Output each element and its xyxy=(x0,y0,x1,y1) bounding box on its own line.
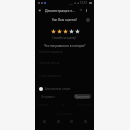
staticText: Анонимный отзыв xyxy=(45,87,71,91)
button[interactable]: Nav 2 xyxy=(54,117,62,125)
button[interactable]: Пропустить xyxy=(74,94,91,99)
staticText: Отправить xyxy=(41,95,55,99)
staticText: Чистота салона xyxy=(39,61,60,65)
button[interactable]: Nav 4 xyxy=(81,117,89,125)
staticText: Пропустить xyxy=(75,95,90,99)
button[interactable]: Rate 4 xyxy=(68,28,74,34)
button[interactable]: Nav 3 xyxy=(67,117,75,125)
button[interactable]: Back xyxy=(36,7,42,13)
button[interactable]: Отправить xyxy=(40,94,56,100)
button[interactable]: Rate 5 xyxy=(74,28,80,34)
staticText: Спасибо за оценку! xyxy=(52,36,77,40)
staticText: Что понравилось в поездке? xyxy=(44,44,86,48)
staticText: Стиль вождения xyxy=(39,74,61,78)
button[interactable]: Rate 1 xyxy=(50,28,56,34)
button[interactable]: Expand xyxy=(78,7,84,13)
staticText: LTE xyxy=(69,2,73,5)
staticText: Рейтинг водителя xyxy=(39,50,63,54)
button[interactable]: Rate 3 xyxy=(62,28,68,34)
button[interactable]: Nav 1 xyxy=(40,117,48,125)
button[interactable]: Help xyxy=(86,18,90,22)
button[interactable]: More options xyxy=(83,7,89,13)
button[interactable]: Rate 2 xyxy=(56,28,62,34)
button[interactable]: Анонимный отзыв xyxy=(35,86,94,92)
staticText: Как Вам оценка? xyxy=(52,18,77,22)
staticText: Демонстрация э… xyxy=(45,8,75,13)
staticText: 13:51 xyxy=(80,1,88,5)
